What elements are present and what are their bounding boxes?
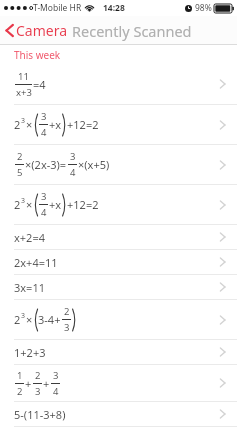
button[interactable]: Open equation 2 cubed times 3 over 4 plu… (0, 185, 237, 224)
button[interactable]: Open equation two fifths times 2x minus … (0, 145, 237, 184)
button[interactable]: Open expression one half plus two thirds… (0, 365, 237, 401)
staticText: 3-4+ (38, 312, 61, 327)
staticText: 4 (41, 206, 47, 219)
staticText: 11 (18, 70, 29, 83)
staticText: +x (49, 117, 62, 132)
staticText: This week (14, 48, 61, 62)
button[interactable]: Open equation 2 cubed times 3 over 4 plu… (0, 105, 237, 144)
staticText: 2x+4=11 (14, 255, 58, 270)
button[interactable]: Open equation 3x equals 11 (0, 275, 237, 299)
staticText: x+2=4 (14, 230, 45, 245)
staticText: ×(x+5) (78, 157, 110, 172)
staticText: 4 (53, 385, 59, 398)
staticText: =4 (33, 77, 46, 92)
staticText: 3x=11 (14, 280, 45, 295)
staticText: x+3 (16, 86, 32, 99)
staticText: +12=2 (67, 117, 99, 132)
staticText: 2 (14, 197, 21, 212)
staticText: Camera (16, 21, 68, 40)
staticText: +x (49, 197, 62, 212)
button[interactable]: Open expression 5 minus 11 minus 3 plus … (0, 402, 237, 426)
staticText: × (26, 312, 33, 327)
staticText: 98% (195, 2, 212, 14)
staticText: 3 (53, 369, 59, 382)
staticText: 3 (21, 311, 26, 321)
staticText: 2 (14, 312, 21, 327)
staticText: × (26, 117, 33, 132)
button[interactable]: Open expression 2 cubed times 3 minus 4 … (0, 300, 237, 339)
staticText: 1 (17, 369, 23, 382)
staticText: 2 (14, 117, 21, 132)
staticText: 4 (41, 126, 47, 139)
staticText: 3 (41, 190, 47, 203)
staticText: Recently Scanned (72, 21, 192, 41)
staticText: 3 (64, 321, 70, 334)
button[interactable]: Open equation 11 over x plus 3 equals 4 (0, 64, 237, 104)
button[interactable]: Camera (0, 17, 74, 44)
staticText: 5 (17, 166, 23, 179)
staticText: 2 (17, 385, 23, 398)
staticText: × (26, 197, 33, 212)
staticText: ×(2x-3)= (25, 157, 67, 172)
staticText: 3 (41, 110, 47, 123)
button[interactable]: Open expression 1 plus 2 plus 3 (0, 340, 237, 364)
staticText: 2 (17, 150, 23, 163)
staticText: 2 (64, 305, 70, 318)
staticText: 1+2+3 (14, 345, 46, 360)
staticText: 2 (35, 369, 41, 382)
staticText: + (43, 376, 50, 391)
staticText: 3 (21, 116, 26, 126)
staticText: 4 (70, 166, 76, 179)
staticText: 3 (70, 150, 76, 163)
staticText: + (25, 376, 32, 391)
staticText: 3 (21, 196, 26, 206)
staticText: T-Mobile HR (33, 2, 82, 14)
staticText: 5-(11-3+8) (14, 407, 66, 422)
button[interactable]: Open equation x plus 2 equals 4 (0, 225, 237, 249)
staticText: 14:28 (103, 2, 125, 14)
staticText: +12=2 (67, 197, 99, 212)
staticText: 3 (35, 385, 41, 398)
button[interactable]: Open equation 2x plus 4 equals 11 (0, 250, 237, 274)
